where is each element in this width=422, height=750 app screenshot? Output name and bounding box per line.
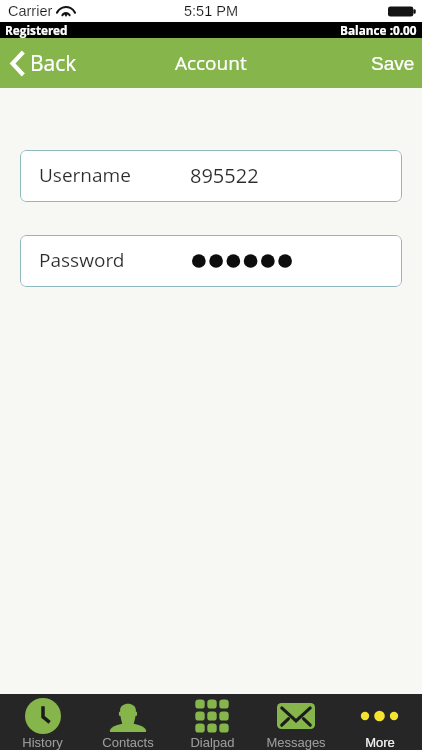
staticText: Messages xyxy=(266,735,326,750)
staticText: Dialpad xyxy=(190,735,235,750)
button[interactable]: Back xyxy=(0,43,89,84)
button[interactable]: History xyxy=(0,694,85,750)
button[interactable]: More xyxy=(338,694,422,750)
staticText: Carrier xyxy=(8,3,53,19)
staticText: 895522 xyxy=(190,162,259,189)
staticText: Balance :0.00 xyxy=(340,22,417,38)
button[interactable]: Username xyxy=(20,150,402,202)
staticText: Back xyxy=(30,49,77,78)
button[interactable]: Password xyxy=(20,235,402,287)
staticText: Username xyxy=(39,162,131,188)
staticText: 5:51 PM xyxy=(184,3,238,19)
staticText: Save xyxy=(371,53,415,74)
staticText: Password xyxy=(39,247,125,273)
button[interactable]: Save xyxy=(359,45,422,82)
button[interactable]: Dialpad xyxy=(170,694,254,750)
button[interactable]: Messages xyxy=(254,694,338,750)
staticText: Contacts xyxy=(102,735,154,750)
button[interactable]: Contacts xyxy=(85,694,170,750)
staticText: Account xyxy=(175,50,247,76)
staticText: History xyxy=(22,735,63,750)
staticText: More xyxy=(365,735,395,750)
staticText: Registered xyxy=(5,22,68,38)
